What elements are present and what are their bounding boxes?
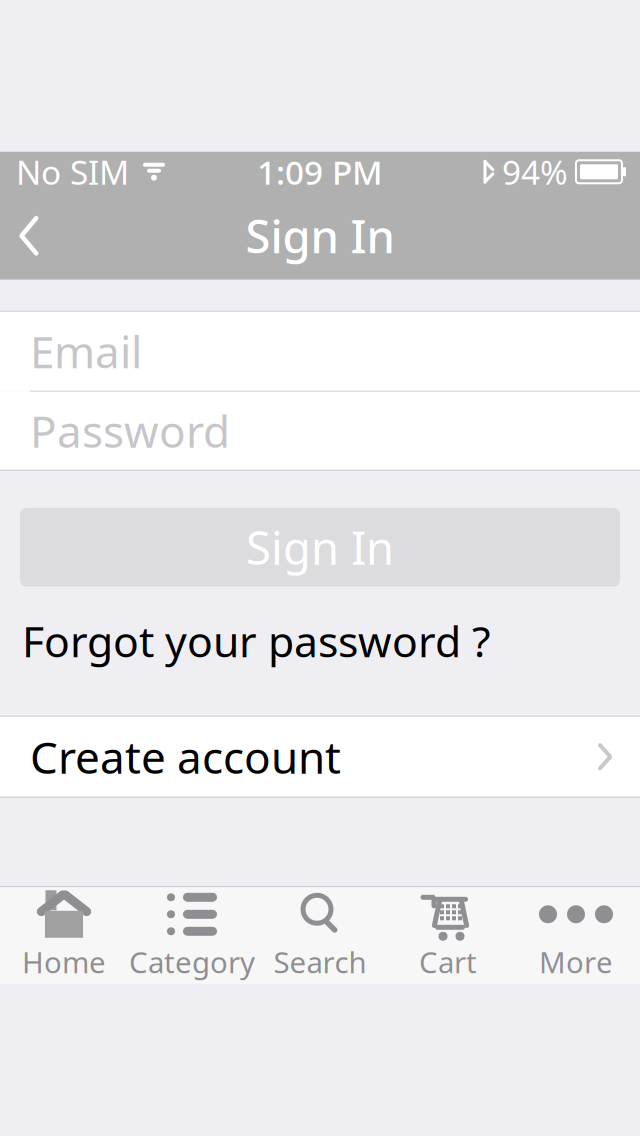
staticText: 1:09 PM: [257, 150, 383, 194]
staticText: Cart: [419, 942, 477, 981]
staticText: Home: [22, 942, 106, 981]
button[interactable]: Search: [256, 887, 384, 985]
button[interactable]: Back: [0, 192, 60, 280]
staticText: Category: [129, 942, 255, 981]
button[interactable]: Create account: [0, 717, 640, 797]
staticText: Sign In: [245, 206, 394, 266]
staticText: Forgot your password ?: [22, 612, 491, 669]
staticText: Password: [30, 401, 230, 460]
staticText: 94%: [502, 150, 568, 194]
button[interactable]: Home: [0, 887, 128, 985]
staticText: More: [539, 942, 613, 981]
button[interactable]: Forgot your password ?: [0, 605, 640, 677]
button[interactable]: Email: [0, 312, 640, 391]
button[interactable]: Category: [128, 887, 256, 985]
staticText: Email: [30, 322, 142, 380]
button[interactable]: Sign In: [20, 508, 620, 587]
staticText: Sign In: [246, 517, 394, 577]
button[interactable]: Password: [0, 392, 640, 470]
staticText: Create account: [30, 727, 341, 786]
button[interactable]: More: [512, 887, 640, 985]
button[interactable]: Cart: [384, 887, 512, 985]
staticText: Search: [273, 942, 366, 981]
staticText: No SIM: [16, 150, 129, 194]
